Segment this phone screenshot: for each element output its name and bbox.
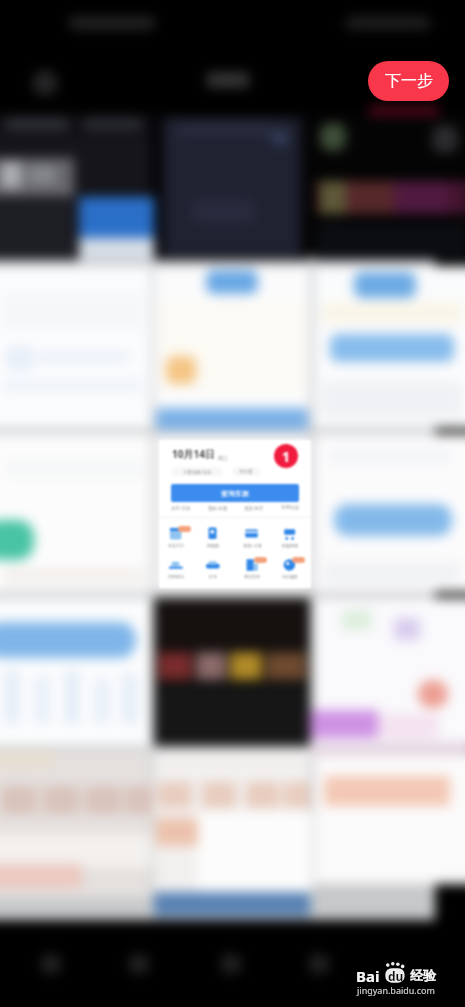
- button[interactable]: 预售·抢票: [208, 505, 228, 511]
- staticText: 只看高铁/动车: [183, 469, 212, 475]
- staticText: 出行服务: [282, 574, 298, 579]
- staticText: 10月14日: [172, 447, 215, 461]
- staticText: 特惠商城: [282, 543, 298, 548]
- staticText: 空铁联运: [168, 574, 184, 579]
- button[interactable]: 退改·签字: [244, 505, 264, 511]
- button[interactable]: 下一步: [368, 61, 449, 101]
- staticText: 退改·签字: [244, 505, 264, 511]
- button[interactable]: Nav 3: [298, 950, 342, 984]
- button[interactable]: 常用信息: [281, 505, 299, 511]
- button[interactable]: 本月·活动: [171, 505, 191, 511]
- button[interactable]: Nav 1: [118, 950, 162, 984]
- staticText: 1: [282, 447, 291, 466]
- staticText: du: [388, 968, 404, 984]
- button[interactable]: Notification 1: [274, 444, 298, 468]
- button[interactable]: 抢购票: [197, 526, 229, 552]
- button[interactable]: 10月14日: [159, 440, 311, 588]
- button[interactable]: Nav 2: [210, 950, 254, 984]
- button[interactable]: 学生票: [232, 467, 260, 476]
- staticText: 酒店住宿: [244, 574, 260, 579]
- button[interactable]: 特惠商城: [274, 526, 306, 552]
- staticText: 经验: [410, 967, 436, 983]
- button[interactable]: 美团+卡通: [236, 526, 268, 552]
- staticText: 常用信息: [281, 505, 299, 511]
- staticText: 美团+卡通: [243, 543, 262, 548]
- staticText: 专业大厅: [168, 543, 184, 548]
- staticText: 查询车票: [221, 489, 249, 498]
- staticText: 周三: [218, 455, 228, 461]
- staticText: 打车: [209, 574, 217, 579]
- button[interactable]: Menu: [32, 70, 58, 96]
- staticText: 抢购票: [207, 543, 219, 548]
- staticText: jingyan.baidu.com: [357, 984, 435, 996]
- staticText: 下一步: [385, 71, 433, 91]
- button[interactable]: 查询车票: [171, 484, 299, 502]
- button[interactable]: 只看高铁/动车: [171, 467, 223, 476]
- staticText: 学生票: [239, 469, 253, 475]
- button[interactable]: 打车: [197, 557, 229, 583]
- button[interactable]: 空铁联运: [160, 557, 192, 583]
- staticText: 预售·抢票: [208, 505, 228, 511]
- button[interactable]: Nav 0: [30, 950, 74, 984]
- staticText: 本月·活动: [171, 505, 191, 511]
- staticText: Bai: [356, 966, 380, 986]
- button[interactable]: 出行服务: [274, 557, 306, 583]
- button[interactable]: 专业大厅: [160, 526, 192, 552]
- button[interactable]: Title: [206, 72, 250, 88]
- button[interactable]: 酒店住宿: [236, 557, 268, 583]
